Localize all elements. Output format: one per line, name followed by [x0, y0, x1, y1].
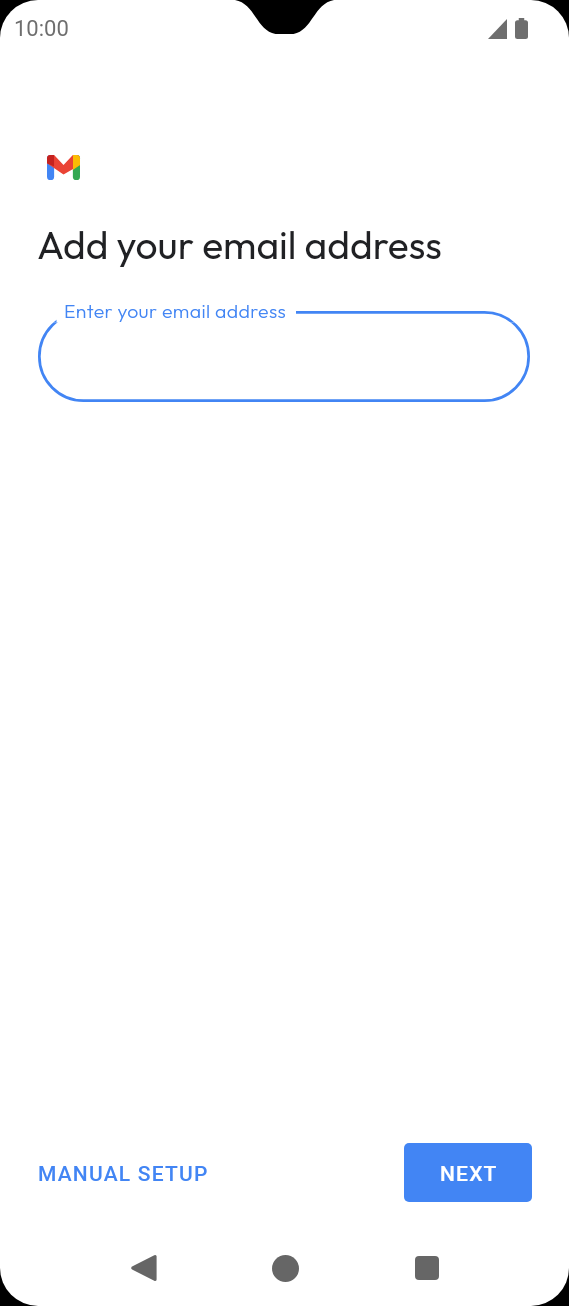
button[interactable]: MANUAL SETUP [22, 1148, 225, 1201]
staticText: MANUAL SETUP [38, 1162, 209, 1187]
staticText: Enter your email address [64, 298, 287, 323]
staticText: Add your email address [37, 220, 442, 269]
button[interactable]: Home [243, 1230, 327, 1306]
staticText: 10:00 [14, 16, 69, 42]
staticText: NEXT [440, 1162, 498, 1187]
button[interactable]: Back [101, 1230, 185, 1306]
button[interactable]: Recent apps [385, 1230, 469, 1306]
button[interactable]: NEXT [404, 1143, 532, 1202]
